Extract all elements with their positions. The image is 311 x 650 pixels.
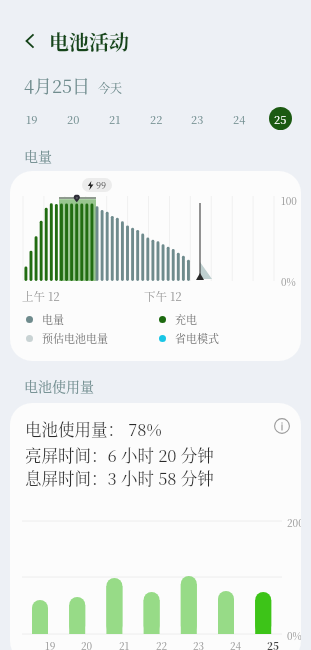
staticText: 电量	[42, 311, 64, 327]
staticText: 21	[109, 111, 121, 127]
staticText: 省电模式	[175, 330, 219, 346]
button[interactable]: 25	[261, 637, 285, 650]
button[interactable]: 21	[112, 637, 136, 650]
button[interactable]: 预估电池电量	[26, 330, 108, 346]
staticText: 20	[67, 111, 80, 127]
staticText: 4月25日	[24, 72, 91, 98]
staticText: 22	[150, 111, 163, 127]
staticText: 电量	[24, 146, 52, 166]
button[interactable]: Back	[18, 29, 42, 53]
button[interactable]: 23	[187, 637, 211, 650]
staticText: 电池使用量： 78%	[25, 417, 162, 441]
staticText: 充电	[175, 311, 197, 327]
staticText: 0%	[287, 628, 301, 642]
button[interactable]: 22	[150, 637, 174, 650]
staticText: 99	[96, 179, 107, 192]
button[interactable]: 22	[145, 107, 168, 130]
button[interactable]: 20	[75, 637, 99, 650]
button[interactable]: 23	[186, 107, 209, 130]
staticText: 亮屏时间：6 小时 20 分钟	[25, 443, 214, 467]
staticText: 预估电池电量	[42, 330, 108, 346]
staticText: 19	[26, 111, 38, 127]
staticText: 21	[119, 638, 130, 650]
staticText: 24	[233, 111, 246, 127]
button[interactable]: Info	[272, 416, 292, 436]
staticText: 200	[287, 515, 301, 529]
button[interactable]: 25	[269, 107, 292, 130]
button[interactable]: 省电模式	[159, 330, 219, 346]
staticText: 息屏时间：3 小时 58 分钟	[25, 466, 214, 490]
staticText: 电池使用量	[24, 376, 94, 396]
button[interactable]: 20	[62, 107, 85, 130]
button[interactable]: 21	[103, 107, 126, 130]
staticText: 0%	[281, 274, 296, 288]
staticText: 100	[281, 193, 297, 207]
button[interactable]: 24	[228, 107, 251, 130]
staticText: 20	[81, 638, 93, 650]
staticText: 23	[191, 111, 204, 127]
staticText: 22	[156, 638, 168, 650]
staticText: 25	[267, 638, 279, 650]
staticText: 上午 12	[22, 288, 60, 305]
staticText: 25	[274, 111, 287, 127]
button[interactable]: 充电	[159, 311, 197, 327]
button[interactable]: 电量	[26, 311, 64, 327]
staticText: 今天	[98, 79, 123, 96]
staticText: 23	[193, 638, 205, 650]
button[interactable]: 19	[20, 107, 43, 130]
button[interactable]: 19	[38, 637, 62, 650]
staticText: 电池活动	[49, 27, 129, 56]
staticText: 24	[230, 638, 242, 650]
button[interactable]: 24	[224, 637, 248, 650]
staticText: 19	[45, 638, 56, 650]
staticText: 下午 12	[144, 288, 182, 305]
